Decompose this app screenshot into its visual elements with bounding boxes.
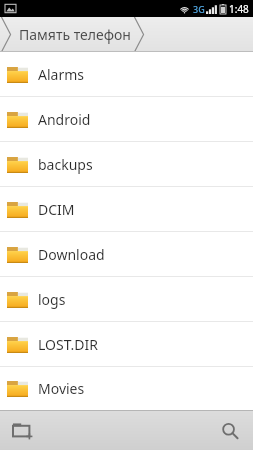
button[interactable]: Android bbox=[0, 97, 253, 141]
button[interactable]: Память телефон bbox=[12, 17, 133, 52]
staticText: Movies bbox=[38, 379, 85, 398]
staticText: Download bbox=[38, 245, 105, 264]
staticText: logs bbox=[38, 290, 66, 309]
staticText: 1:48 bbox=[229, 2, 249, 16]
button[interactable]: DCIM bbox=[0, 187, 253, 231]
staticText: LOST.DIR bbox=[38, 335, 99, 354]
staticText: Alarms bbox=[38, 65, 84, 84]
staticText: 3G bbox=[193, 3, 205, 15]
button[interactable]: backups bbox=[0, 142, 253, 186]
staticText: Android bbox=[38, 110, 91, 129]
button[interactable]: LOST.DIR bbox=[0, 322, 253, 366]
button[interactable]: Download bbox=[0, 232, 253, 276]
button[interactable]: Alarms bbox=[0, 52, 253, 96]
button[interactable]: Search bbox=[207, 411, 253, 450]
staticText: Память телефон bbox=[19, 25, 131, 44]
button[interactable]: New folder bbox=[0, 411, 46, 450]
staticText: backups bbox=[38, 155, 93, 174]
staticText: DCIM bbox=[38, 200, 75, 219]
button[interactable]: Movies bbox=[0, 367, 253, 410]
button[interactable]: logs bbox=[0, 277, 253, 321]
